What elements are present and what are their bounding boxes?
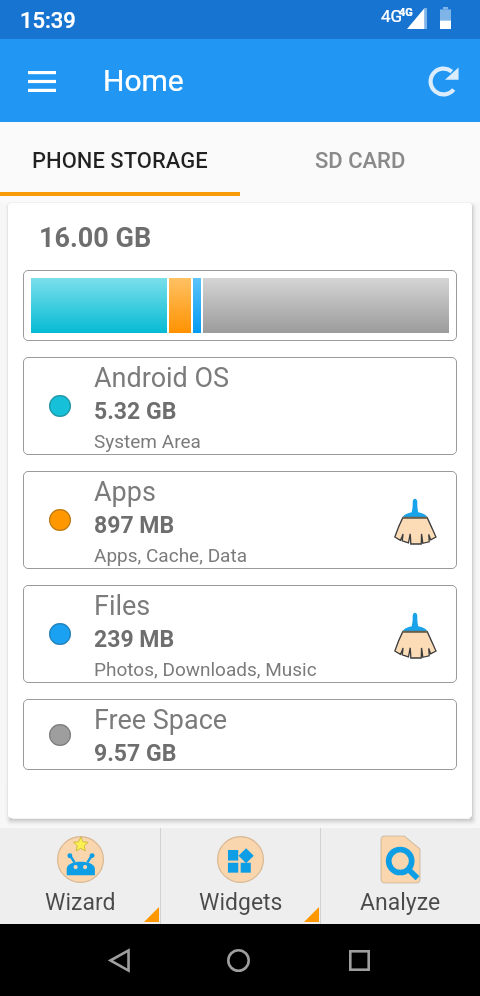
staticText: Android OS xyxy=(94,362,230,394)
staticText: 239 MB xyxy=(94,626,175,653)
button[interactable]: Back xyxy=(97,946,142,974)
button[interactable]: Recent apps xyxy=(337,946,382,974)
button[interactable]: Android OS xyxy=(23,357,457,455)
button[interactable]: Files xyxy=(23,585,457,683)
staticText: 9.57 GB xyxy=(94,740,177,767)
staticText: Apps xyxy=(94,476,156,508)
staticText: Free Space xyxy=(94,704,228,736)
button[interactable]: PHONE STORAGE xyxy=(0,122,240,203)
staticText: System Area xyxy=(94,430,201,452)
staticText: 15:39 xyxy=(20,8,76,34)
button[interactable]: Refresh xyxy=(411,49,475,113)
staticText: Apps, Cache, Data xyxy=(94,544,247,566)
staticText: 4G xyxy=(381,6,403,26)
button[interactable]: Open navigation menu xyxy=(8,47,76,115)
staticText: SD CARD xyxy=(315,148,406,174)
staticText: Home xyxy=(103,63,184,98)
staticText: 4G xyxy=(399,6,413,19)
staticText: PHONE STORAGE xyxy=(32,148,208,174)
button[interactable]: Wizard xyxy=(0,828,160,924)
staticText: Widgets xyxy=(199,889,283,916)
staticText: 5.32 GB xyxy=(94,398,177,425)
button[interactable]: Widgets xyxy=(161,828,320,924)
button[interactable]: Apps xyxy=(23,471,457,569)
staticText: Photos, Downloads, Music xyxy=(94,658,317,680)
button[interactable]: Analyze xyxy=(321,828,480,924)
staticText: 897 MB xyxy=(94,512,175,539)
staticText: Files xyxy=(94,590,151,622)
button[interactable]: Free Space xyxy=(23,699,457,770)
button[interactable]: Home xyxy=(216,946,261,974)
staticText: 16.00 GB xyxy=(39,222,152,254)
staticText: Wizard xyxy=(45,889,116,916)
button[interactable]: SD CARD xyxy=(240,122,480,203)
staticText: Analyze xyxy=(360,889,441,916)
